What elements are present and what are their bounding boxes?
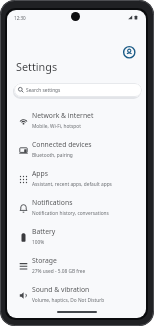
button[interactable] — [123, 46, 136, 59]
staticText: Apps — [32, 169, 48, 178]
staticText: 27% used - 5.08 GB free — [32, 268, 86, 275]
staticText: Assistant, recent apps, default apps — [32, 181, 112, 188]
staticText: Mobile, Wi-Fi, hotspot — [32, 123, 81, 130]
button[interactable]: Apps — [7, 165, 146, 194]
staticText: 100% — [32, 239, 45, 246]
staticText: Notifications — [32, 198, 73, 207]
button[interactable]: Notifications — [7, 194, 146, 223]
staticText: 12:30 — [14, 15, 26, 21]
button[interactable]: Network & internet — [7, 107, 146, 136]
button[interactable]: Search settings — [14, 83, 142, 97]
staticText: Notification history, conversations — [32, 210, 109, 217]
staticText: Search settings — [26, 87, 61, 94]
button[interactable]: Sound & vibration — [7, 281, 146, 310]
button[interactable]: Connected devices — [7, 136, 146, 165]
staticText: Settings — [16, 59, 58, 74]
staticText: Storage — [32, 256, 57, 265]
staticText: Battery — [32, 227, 56, 236]
button[interactable]: Battery — [7, 223, 146, 252]
staticText: Volume, haptics, Do Not Disturb — [32, 297, 105, 304]
button[interactable]: Storage — [7, 252, 146, 281]
staticText: Network & internet — [32, 111, 94, 120]
staticText: Sound & vibration — [32, 285, 90, 294]
staticText: Bluetooth, pairing — [32, 152, 73, 159]
staticText: Connected devices — [32, 140, 92, 149]
